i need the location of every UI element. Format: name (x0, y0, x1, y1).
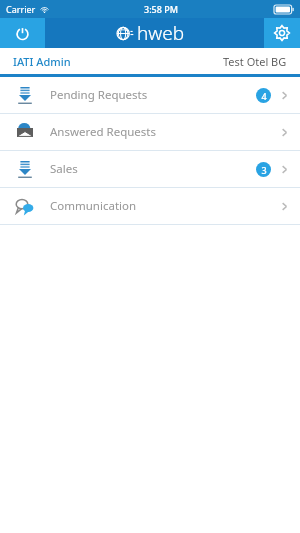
button[interactable]: Communication (0, 188, 300, 224)
staticText: Communication (50, 198, 137, 214)
staticText: 3:58 PM (144, 3, 178, 15)
staticText: 3 (261, 164, 267, 176)
button[interactable]: Answered Requests (0, 114, 300, 150)
staticText: Pending Requests (50, 87, 148, 103)
staticText: Answered Requests (50, 124, 157, 140)
staticText: Sales (50, 161, 78, 177)
button[interactable]: Sales (0, 151, 300, 187)
button[interactable]: Settings (264, 18, 300, 48)
staticText: hweb (137, 20, 185, 46)
staticText: Carrier (6, 3, 36, 15)
button[interactable]: Power / Log out (0, 18, 45, 48)
button[interactable]: Pending Requests (0, 77, 300, 113)
staticText: IATI Admin (13, 54, 71, 69)
staticText: Test Otel BG (223, 54, 287, 69)
staticText: 4 (261, 90, 267, 102)
